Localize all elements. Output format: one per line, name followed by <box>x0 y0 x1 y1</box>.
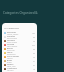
staticText: Phones, laptops <box>7 33 19 35</box>
staticText: Garden <box>7 63 14 65</box>
staticText: Kids fun <box>7 57 13 59</box>
staticText: Home & office <box>7 41 18 43</box>
button[interactable]: Furniture <box>2 39 37 43</box>
staticText: Sports <box>7 51 13 53</box>
staticText: Beauty <box>7 47 13 49</box>
staticText: Skin & hair <box>7 49 15 51</box>
button[interactable]: Automotive <box>2 67 37 71</box>
staticText: 98 <box>33 48 35 50</box>
staticText: Plants, tools <box>7 65 16 67</box>
staticText: All Categories <box>4 27 19 30</box>
button[interactable]: Garden <box>2 63 37 67</box>
staticText: 212 <box>32 44 35 46</box>
staticText: Clothing <box>7 43 15 45</box>
staticText: Furniture <box>7 39 15 41</box>
staticText: Fresh produce <box>7 37 18 39</box>
button[interactable]: Clothing <box>2 43 37 47</box>
staticText: 67 <box>33 64 35 66</box>
staticText: 124 <box>32 32 35 34</box>
staticText: Men & women <box>7 45 18 47</box>
button[interactable]: Toys & Games <box>2 55 37 59</box>
staticText: 86 <box>33 36 35 38</box>
staticText: Fiction <box>7 61 12 63</box>
staticText: 31 <box>33 60 35 62</box>
staticText: 54 <box>33 52 35 54</box>
button[interactable]: Books <box>2 59 37 63</box>
staticText: Fitness gear <box>7 53 16 55</box>
button[interactable]: Sports <box>2 51 37 55</box>
staticText: Groceries <box>7 35 16 37</box>
button[interactable]: Electronics <box>2 31 37 35</box>
staticText: Toys & Games <box>7 55 19 57</box>
staticText: Automotive <box>7 67 17 69</box>
staticText: Books <box>7 59 13 61</box>
staticText: 45 <box>33 40 35 42</box>
staticText: 73 <box>33 56 35 58</box>
staticText: 19 <box>33 68 35 70</box>
button[interactable]: Groceries <box>2 35 37 39</box>
staticText: Categories Organized & Easy to Find <box>3 11 38 15</box>
staticText: Electronics <box>7 31 17 33</box>
button[interactable]: Beauty <box>2 47 37 51</box>
staticText: Car parts <box>7 69 14 71</box>
